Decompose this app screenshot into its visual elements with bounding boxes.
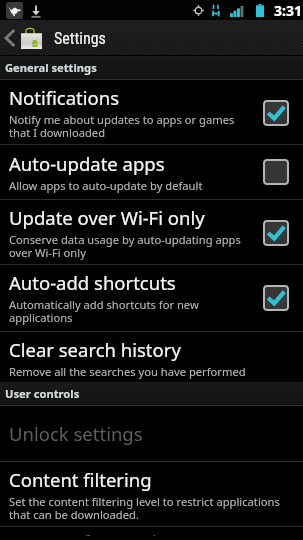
button[interactable]: Use PIN for purchases xyxy=(0,527,303,540)
staticText: Remove all the searches you have perform… xyxy=(9,364,246,379)
staticText: Content filtering xyxy=(9,467,152,492)
staticText: Auto-update apps xyxy=(9,151,165,176)
button[interactable]: Navigate up xyxy=(0,20,303,56)
staticText: Set the content filtering level to restr… xyxy=(9,494,280,522)
staticText: General settings xyxy=(5,60,97,75)
button[interactable]: Content filtering xyxy=(0,462,303,526)
staticText: Conserve data usage by auto-updating app… xyxy=(9,232,241,260)
button[interactable]: Auto-update apps xyxy=(0,145,303,199)
staticText: User controls xyxy=(5,386,80,401)
staticText: Use PIN for purchases xyxy=(9,529,202,536)
staticText: Notify me about updates to apps or games… xyxy=(9,112,235,140)
staticText: Update over Wi-Fi only xyxy=(9,205,205,230)
button[interactable]: Update over Wi-Fi only xyxy=(0,200,303,264)
staticText: Unlock settings xyxy=(9,421,143,446)
staticText: 3:31 xyxy=(274,1,302,20)
staticText: Settings xyxy=(54,29,106,48)
button[interactable]: Auto-add shortcuts xyxy=(0,265,303,331)
button[interactable]: Unlock settings xyxy=(0,406,303,461)
staticText: Auto-add shortcuts xyxy=(9,270,176,295)
staticText: Allow apps to auto-update by default xyxy=(9,178,203,193)
button[interactable]: Notifications xyxy=(0,80,303,144)
other: Navigate up xyxy=(3,28,17,48)
staticText: Clear search history xyxy=(9,337,181,362)
button[interactable]: Clear search history xyxy=(0,332,303,382)
staticText: Automatically add shortcuts for new appl… xyxy=(9,297,199,325)
staticText: Notifications xyxy=(9,85,120,110)
